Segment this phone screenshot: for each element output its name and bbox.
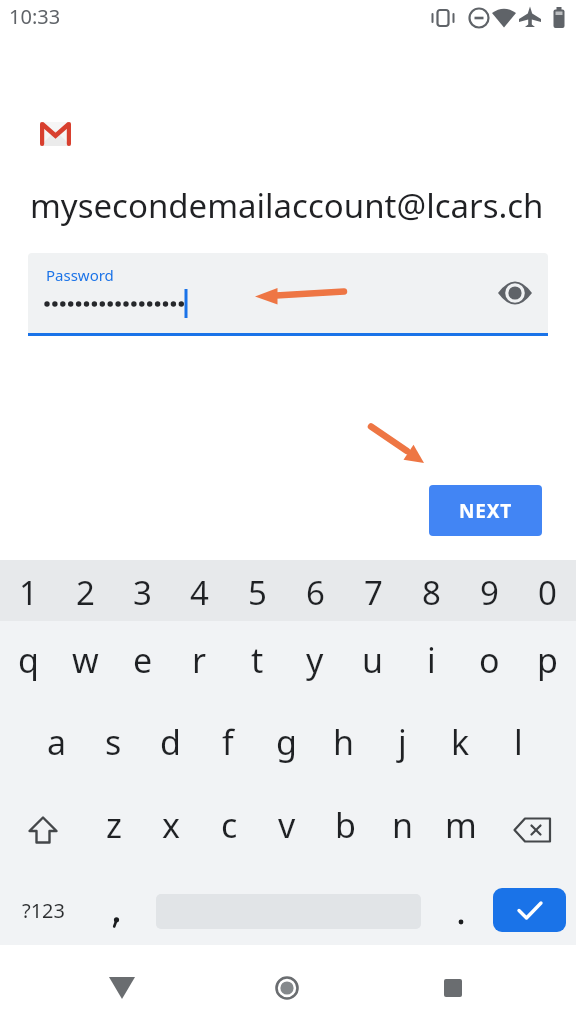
staticText: x bbox=[162, 802, 180, 848]
staticText: v bbox=[278, 802, 296, 848]
staticText: r bbox=[192, 637, 207, 683]
button[interactable] bbox=[493, 888, 566, 932]
staticText: g bbox=[276, 719, 297, 765]
button[interactable]: 8 bbox=[402, 560, 460, 621]
staticText: a bbox=[47, 719, 67, 765]
staticText: p bbox=[537, 637, 558, 683]
staticText: e bbox=[133, 637, 153, 683]
button[interactable]: 1 bbox=[0, 560, 57, 621]
staticText: q bbox=[18, 637, 39, 683]
staticText: n bbox=[392, 802, 414, 848]
button[interactable]: ?123 bbox=[0, 869, 86, 945]
button[interactable]: NEXT bbox=[429, 485, 542, 536]
button[interactable]: r bbox=[171, 621, 228, 704]
staticText: s bbox=[105, 719, 122, 765]
staticText: 0 bbox=[538, 570, 557, 615]
button[interactable]: y bbox=[286, 621, 344, 704]
button[interactable]: 6 bbox=[286, 560, 344, 621]
staticText: 5 bbox=[248, 570, 267, 615]
staticText: b bbox=[335, 802, 356, 848]
button[interactable]: b bbox=[316, 786, 374, 869]
button[interactable]: Password bbox=[28, 253, 548, 333]
staticText: 9 bbox=[480, 570, 499, 615]
staticText: f bbox=[222, 719, 234, 765]
button[interactable]: p bbox=[518, 621, 576, 704]
button[interactable]: e bbox=[114, 621, 171, 704]
button[interactable]: m bbox=[432, 786, 490, 869]
button[interactable]: l bbox=[489, 704, 547, 786]
staticText: w bbox=[72, 637, 99, 683]
button[interactable]: c bbox=[200, 786, 258, 869]
button[interactable] bbox=[429, 964, 477, 1012]
staticText: o bbox=[479, 637, 500, 683]
button[interactable] bbox=[432, 869, 490, 945]
button[interactable]: 3 bbox=[114, 560, 171, 621]
staticText: ?123 bbox=[22, 897, 65, 924]
staticText: 8 bbox=[422, 570, 441, 615]
staticText: l bbox=[514, 719, 523, 765]
staticText: u bbox=[362, 637, 384, 683]
button[interactable]: 4 bbox=[171, 560, 228, 621]
staticText: 7 bbox=[364, 570, 383, 615]
button[interactable] bbox=[490, 869, 576, 945]
staticText: mysecondemailaccount@lcars.ch bbox=[30, 183, 544, 228]
button[interactable]: 7 bbox=[344, 560, 402, 621]
staticText: d bbox=[160, 719, 181, 765]
staticText: c bbox=[221, 802, 238, 848]
button[interactable]: n bbox=[374, 786, 432, 869]
staticText: k bbox=[451, 719, 470, 765]
button[interactable]: h bbox=[315, 704, 373, 786]
button[interactable]: a bbox=[28, 704, 85, 786]
button[interactable] bbox=[86, 869, 144, 945]
staticText: 3 bbox=[133, 570, 152, 615]
button[interactable]: v bbox=[258, 786, 316, 869]
staticText: 4 bbox=[190, 570, 209, 615]
button[interactable]: 5 bbox=[228, 560, 286, 621]
button[interactable]: 2 bbox=[57, 560, 114, 621]
button[interactable] bbox=[98, 964, 146, 1012]
button[interactable]: x bbox=[142, 786, 200, 869]
staticText: NEXT bbox=[459, 498, 512, 524]
button[interactable]: 9 bbox=[460, 560, 518, 621]
button[interactable]: j bbox=[373, 704, 431, 786]
staticText: t bbox=[251, 637, 264, 683]
button[interactable] bbox=[490, 786, 576, 869]
button[interactable]: k bbox=[431, 704, 489, 786]
button[interactable]: u bbox=[344, 621, 402, 704]
button[interactable] bbox=[144, 869, 432, 945]
staticText: m bbox=[445, 802, 477, 848]
button[interactable]: q bbox=[0, 621, 57, 704]
button[interactable] bbox=[263, 964, 311, 1012]
button[interactable]: w bbox=[57, 621, 114, 704]
staticText: j bbox=[398, 719, 407, 765]
staticText: 1 bbox=[19, 570, 38, 615]
button[interactable] bbox=[491, 269, 539, 317]
staticText: 10:33 bbox=[9, 3, 61, 30]
button[interactable]: g bbox=[257, 704, 315, 786]
button[interactable]: f bbox=[199, 704, 257, 786]
staticText: z bbox=[106, 802, 122, 848]
button[interactable] bbox=[0, 786, 85, 869]
button[interactable]: d bbox=[142, 704, 199, 786]
staticText: 6 bbox=[306, 570, 325, 615]
staticText: y bbox=[306, 637, 324, 683]
button[interactable]: 0 bbox=[518, 560, 576, 621]
staticText: i bbox=[427, 637, 436, 683]
staticText: Password bbox=[46, 265, 114, 285]
button[interactable]: i bbox=[402, 621, 460, 704]
staticText: h bbox=[333, 719, 355, 765]
button[interactable]: o bbox=[460, 621, 518, 704]
button[interactable]: z bbox=[85, 786, 142, 869]
button[interactable]: s bbox=[85, 704, 142, 786]
staticText: 2 bbox=[76, 570, 95, 615]
button[interactable]: t bbox=[228, 621, 286, 704]
